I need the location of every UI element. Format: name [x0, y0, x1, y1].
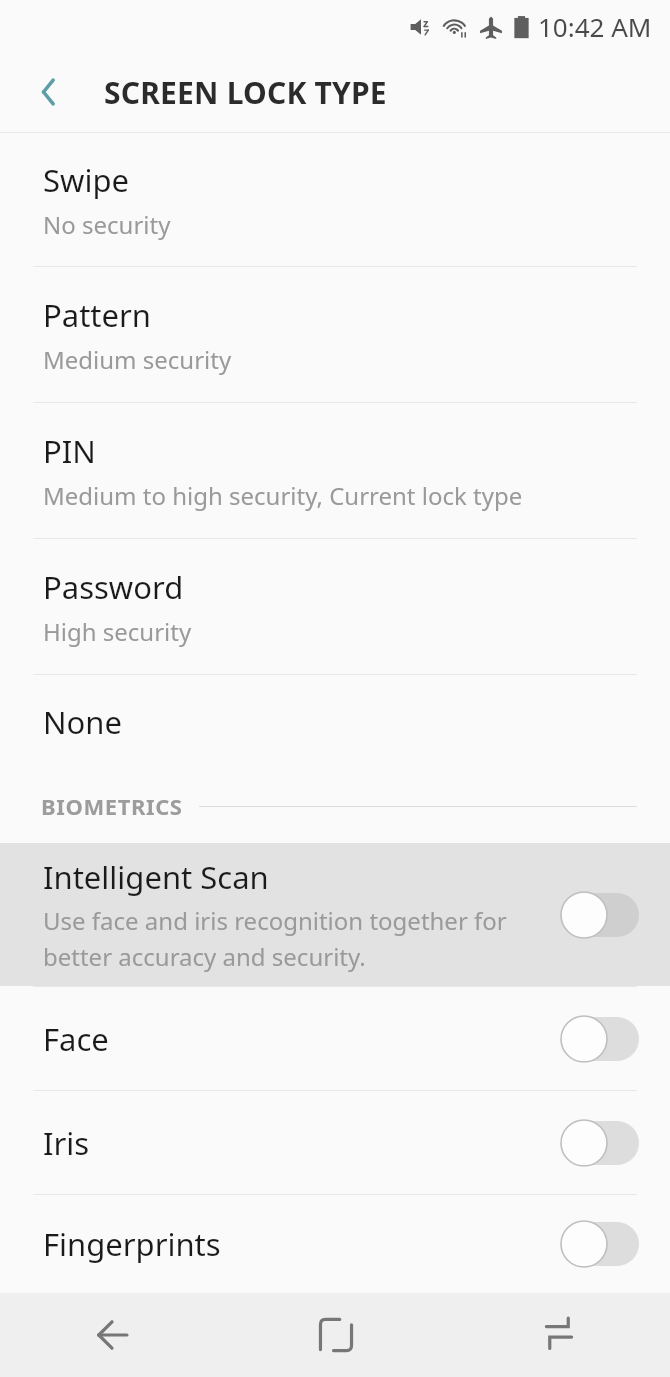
button[interactable]: Intelligent Scan: [0, 843, 670, 986]
staticText: Intelligent Scan: [43, 856, 269, 898]
staticText: Fingerprints: [43, 1223, 221, 1265]
button[interactable]: Home: [224, 1293, 447, 1377]
staticText: PIN: [43, 430, 96, 472]
staticText: No security: [43, 208, 171, 241]
staticText: Password: [43, 566, 184, 608]
button[interactable]: Pattern: [0, 267, 670, 402]
button[interactable]: Back: [24, 66, 76, 118]
staticText: Medium to high security, Current lock ty…: [43, 479, 523, 512]
staticText: Use face and iris recognition together f…: [43, 904, 507, 937]
staticText: None: [43, 701, 122, 743]
staticText: Medium security: [43, 343, 232, 376]
button[interactable]: Password: [0, 539, 670, 674]
button[interactable]: Iris: [0, 1091, 670, 1194]
button[interactable]: Swipe: [0, 133, 670, 266]
button[interactable]: Toggle: [558, 1013, 642, 1065]
button[interactable]: PIN: [0, 403, 670, 538]
staticText: 10:42 AM: [538, 9, 652, 44]
staticText: Iris: [43, 1122, 90, 1164]
staticText: better accuracy and security.: [43, 940, 366, 973]
button[interactable]: None: [0, 675, 670, 768]
button[interactable]: Toggle: [558, 889, 642, 941]
staticText: Face: [43, 1018, 109, 1060]
staticText: SCREEN LOCK TYPE: [104, 72, 387, 113]
button[interactable]: Toggle: [558, 1117, 642, 1169]
button[interactable]: Recents: [447, 1293, 670, 1377]
button[interactable]: Face: [0, 987, 670, 1090]
staticText: Pattern: [43, 294, 151, 336]
button[interactable]: Back: [0, 1293, 224, 1377]
button[interactable]: Fingerprints: [0, 1195, 670, 1293]
staticText: BIOMETRICS: [41, 791, 183, 821]
button[interactable]: Toggle: [558, 1218, 642, 1270]
staticText: Swipe: [43, 159, 129, 201]
staticText: High security: [43, 615, 192, 648]
